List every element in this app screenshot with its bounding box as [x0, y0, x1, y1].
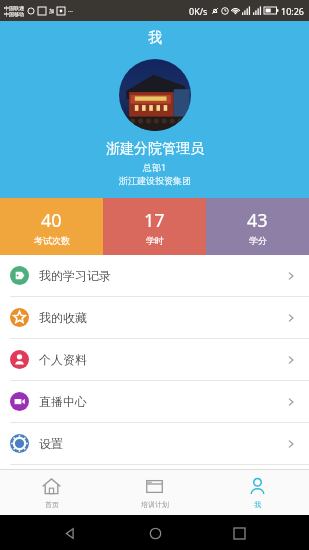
- button[interactable]: 我的学习记录: [0, 255, 309, 296]
- button[interactable]: 我的收藏: [0, 297, 309, 338]
- staticText: 个人资料: [39, 352, 87, 367]
- staticText: 学分: [249, 235, 267, 246]
- staticText: 我: [254, 500, 261, 509]
- staticText: 10:26: [281, 5, 305, 17]
- button[interactable]: 17: [103, 198, 206, 255]
- staticText: 加: [49, 8, 54, 14]
- button[interactable]: 设置: [0, 423, 309, 464]
- staticText: 我的收藏: [39, 310, 87, 325]
- staticText: 直播中心: [39, 394, 87, 409]
- staticText: 设置: [39, 436, 63, 451]
- button[interactable]: Home: [140, 518, 170, 548]
- button[interactable]: 培训计划: [103, 470, 206, 515]
- staticText: 17: [144, 208, 165, 233]
- staticText: 中国移动: [4, 11, 24, 17]
- staticText: 培训计划: [141, 500, 169, 509]
- staticText: 0K/s: [189, 5, 208, 17]
- staticText: 中国联通: [4, 5, 24, 11]
- button[interactable]: 40: [0, 198, 103, 255]
- staticText: 总部1: [143, 161, 167, 173]
- staticText: 40: [41, 208, 62, 233]
- button[interactable]: 个人资料: [0, 339, 309, 380]
- staticText: 我: [148, 29, 162, 47]
- button[interactable]: Back: [55, 518, 85, 548]
- button[interactable]: 我: [206, 470, 309, 515]
- button[interactable]: 首页: [0, 470, 103, 515]
- button[interactable]: Profile photo: [119, 59, 191, 131]
- button[interactable]: 43: [206, 198, 309, 255]
- staticText: 学时: [146, 235, 164, 246]
- staticText: 43: [247, 208, 268, 233]
- staticText: 考试次数: [34, 235, 70, 246]
- staticText: 浙江建设投资集团: [119, 175, 191, 186]
- staticText: ···: [68, 7, 73, 15]
- staticText: 浙建分院管理员: [106, 140, 204, 158]
- button[interactable]: 直播中心: [0, 381, 309, 422]
- staticText: 我的学习记录: [39, 268, 111, 283]
- button[interactable]: Recent apps: [224, 518, 254, 548]
- staticText: 首页: [45, 500, 59, 509]
